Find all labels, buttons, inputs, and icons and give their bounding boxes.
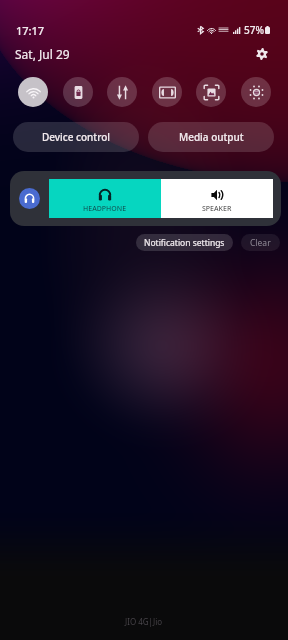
button[interactable]: Settings — [252, 44, 272, 64]
staticText: 57% — [244, 23, 264, 37]
staticText: 17:17 — [16, 23, 45, 38]
button[interactable]: Dolby Atmos — [152, 77, 182, 107]
button[interactable]: HEADPHONE — [49, 179, 161, 218]
staticText: Device control — [42, 130, 111, 144]
staticText: Sat, Jul 29 — [15, 46, 70, 62]
staticText: Media output — [179, 130, 244, 144]
button[interactable]: Device control — [13, 122, 139, 152]
button[interactable]: Notification settings — [136, 234, 233, 251]
staticText: Clear — [250, 237, 271, 249]
button[interactable]: Brightness — [241, 77, 271, 107]
button[interactable]: Mobile data — [107, 77, 137, 107]
staticText: SPEAKER — [202, 204, 232, 214]
staticText: Notification settings — [144, 237, 225, 249]
button[interactable]: Clear — [241, 234, 280, 251]
staticText: JIO 4G|Jio — [125, 616, 163, 627]
button[interactable]: SPEAKER — [161, 179, 273, 218]
staticText: HEADPHONE — [83, 204, 127, 214]
button[interactable]: Auto rotate — [63, 77, 93, 107]
button[interactable]: Screen recorder — [196, 77, 226, 107]
button[interactable]: Audio output device — [19, 188, 40, 209]
button[interactable]: Media output — [148, 122, 274, 152]
button[interactable]: Wi-Fi — [18, 77, 48, 107]
